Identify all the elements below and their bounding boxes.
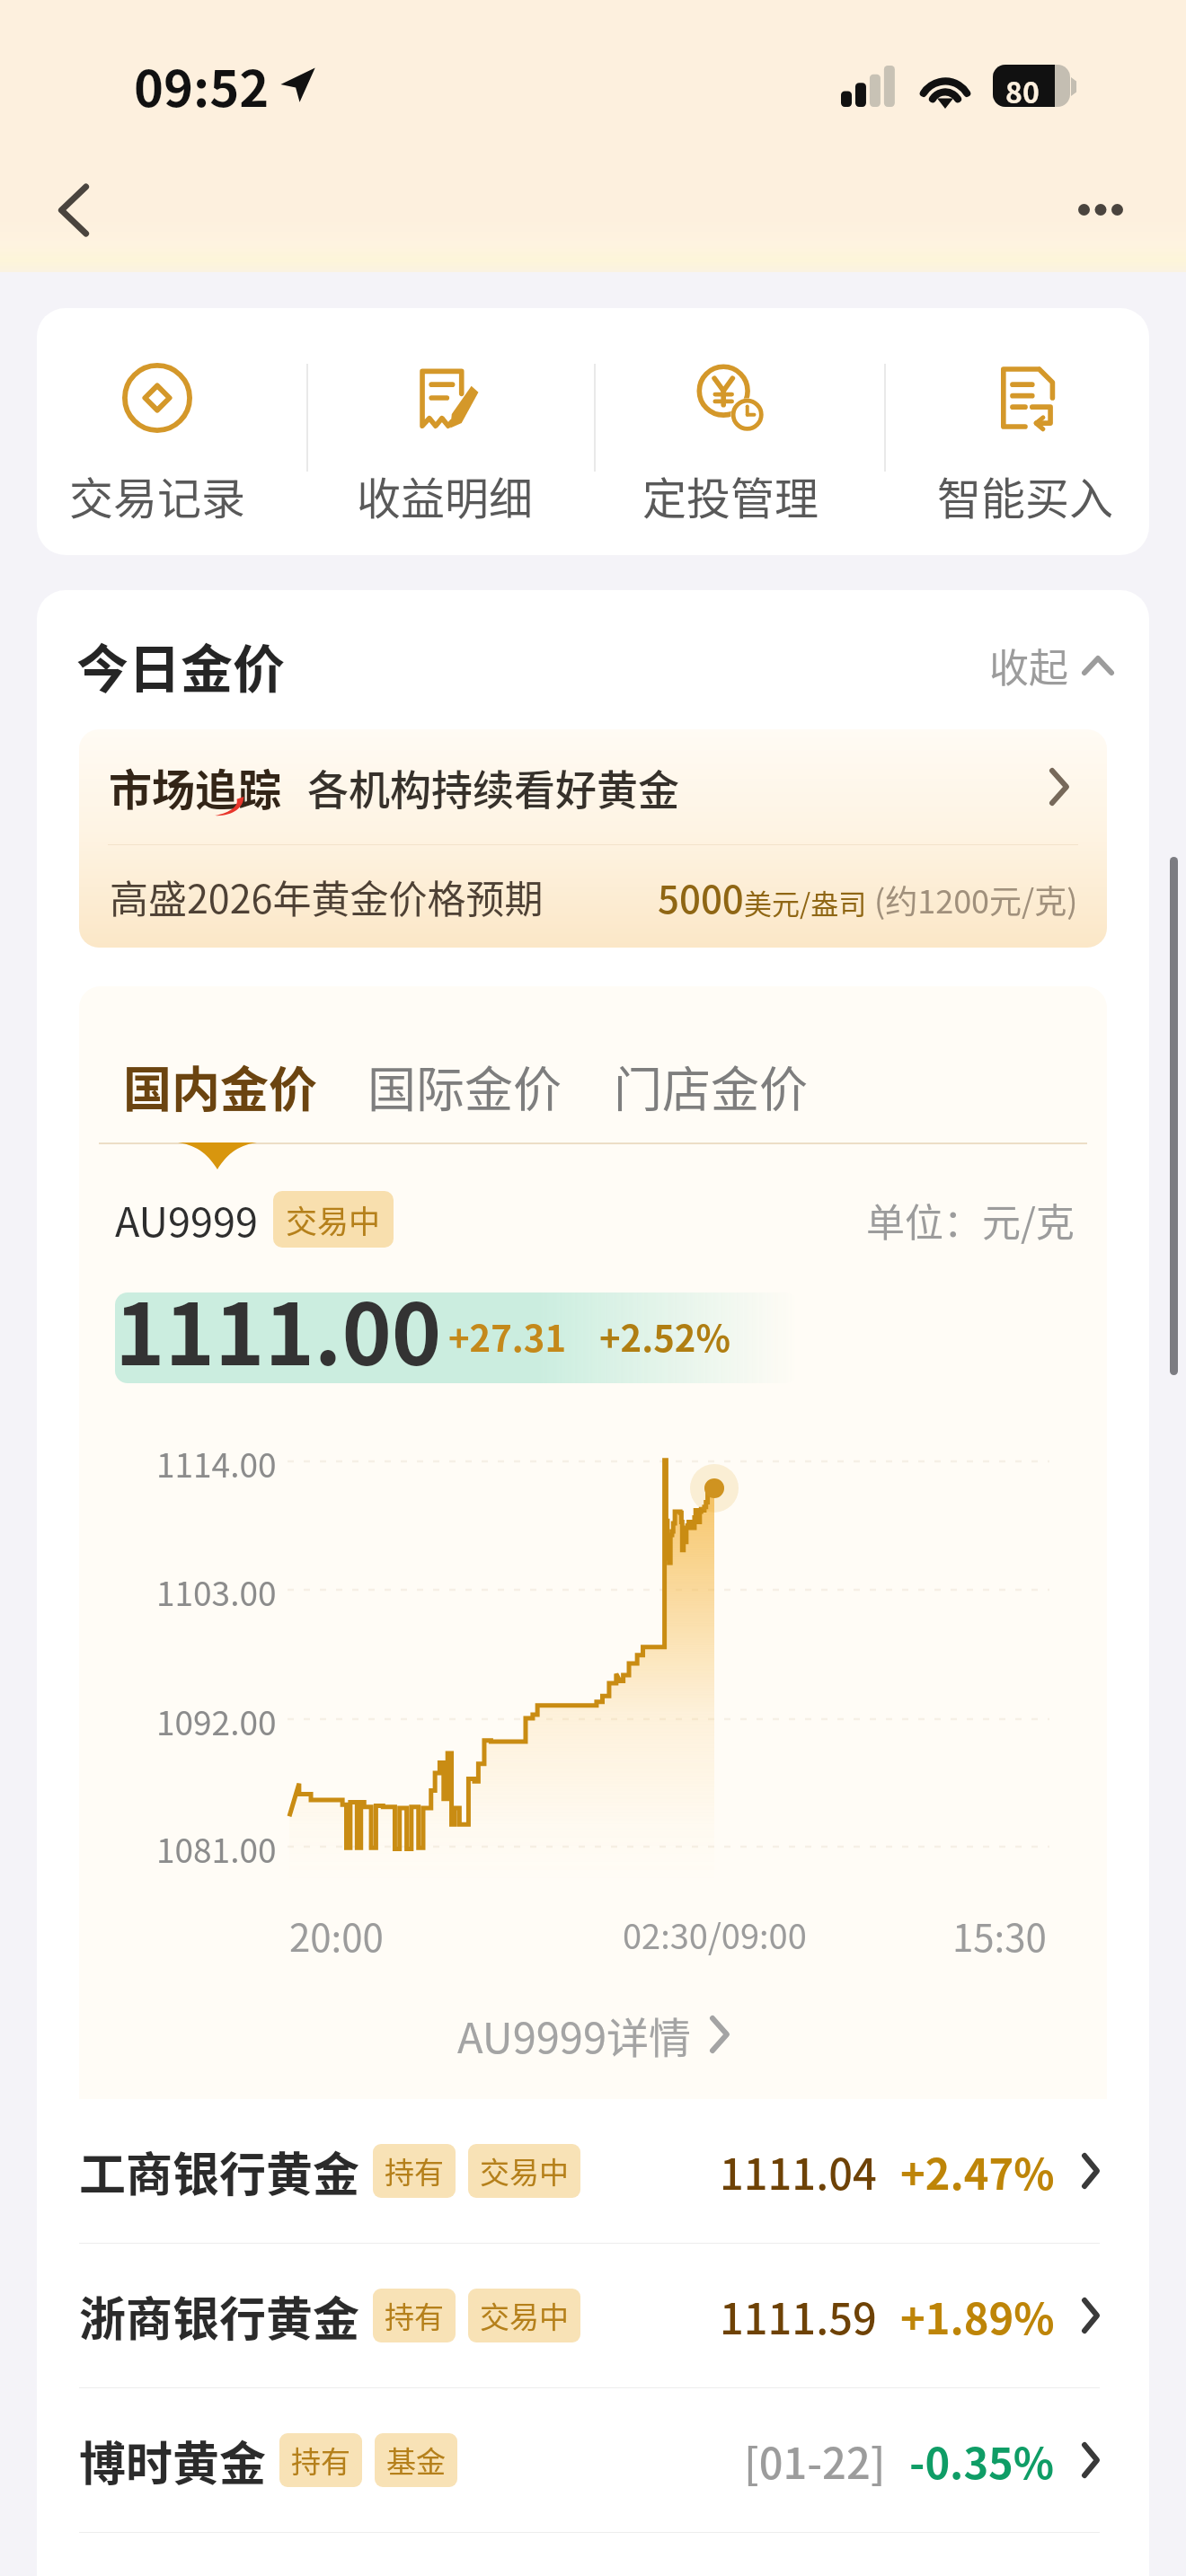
staticText: 基金: [386, 2439, 446, 2482]
button[interactable]: AU9999详情: [79, 1998, 1107, 2070]
button[interactable]: 智能买入: [890, 308, 1149, 555]
staticText: 1103.00: [156, 1567, 277, 1616]
staticText: 各机构持续看好黄金: [307, 757, 679, 817]
button[interactable]: 工商银行黄金: [79, 2099, 1100, 2243]
staticText: 1111.59: [720, 2285, 877, 2346]
staticText: +1.89%: [900, 2285, 1055, 2346]
button[interactable]: More options: [1056, 164, 1146, 254]
staticText: 定投管理: [642, 463, 819, 527]
staticText: 1092.00: [156, 1697, 277, 1745]
button[interactable]: 收起: [989, 626, 1113, 705]
button[interactable]: 博时黄金: [79, 2388, 1100, 2532]
staticText: 高盛2026年黄金价格预期: [110, 869, 544, 924]
staticText: 交易记录: [69, 463, 246, 527]
staticText: +27.31: [448, 1310, 566, 1363]
staticText: 1081.00: [156, 1824, 277, 1873]
staticText: 80: [1005, 70, 1040, 111]
staticText: 收起: [989, 637, 1068, 694]
staticText: AU9999详情: [457, 2004, 692, 2065]
staticText: AU9999: [115, 1190, 258, 1248]
staticText: 收益明细: [357, 463, 534, 527]
button[interactable]: 国际金价: [367, 1051, 562, 1121]
staticText: 智能买入: [937, 463, 1114, 527]
staticText: 交易中: [286, 1196, 381, 1242]
staticText: 交易中: [480, 2149, 569, 2192]
staticText: -0.35%: [909, 2430, 1055, 2491]
staticText: 持有: [385, 2149, 444, 2192]
button[interactable]: 浙商银行黄金: [79, 2244, 1100, 2387]
staticText: [01-22]: [744, 2430, 886, 2491]
staticText: +2.52%: [599, 1310, 730, 1363]
button[interactable]: 定投管理: [596, 308, 865, 555]
staticText: 1111.00: [115, 1267, 442, 1375]
staticText: +2.47%: [900, 2140, 1055, 2201]
staticText: (约1200元/克): [874, 876, 1078, 922]
button[interactable]: Back: [29, 165, 119, 255]
staticText: 09:52: [134, 49, 270, 121]
staticText: 工商银行黄金: [79, 2138, 360, 2205]
button[interactable]: 收益明细: [310, 308, 580, 555]
staticText: 持有: [385, 2294, 444, 2337]
staticText: 1114.00: [156, 1439, 277, 1487]
staticText: 5000: [658, 869, 744, 924]
staticText: 博时黄金: [79, 2427, 267, 2494]
staticText: 单位：: [866, 1192, 982, 1248]
staticText: 20:00: [289, 1908, 384, 1963]
button[interactable]: 国内金价: [123, 1051, 317, 1121]
staticText: 1111.04: [720, 2140, 877, 2201]
staticText: 门店金价: [614, 1051, 808, 1121]
staticText: 今日金价: [76, 628, 286, 703]
staticText: 元/克: [982, 1192, 1075, 1248]
staticText: 国际金价: [367, 1051, 562, 1121]
staticText: 市场追踪: [109, 755, 282, 818]
button[interactable]: 交易记录: [37, 308, 292, 555]
staticText: 02:30/09:00: [623, 1910, 807, 1959]
staticText: 国内金价: [123, 1051, 317, 1121]
staticText: 持有: [291, 2439, 350, 2482]
staticText: 15:30: [952, 1908, 1047, 1963]
staticText: 交易中: [480, 2294, 569, 2337]
staticText: 浙商银行黄金: [79, 2282, 360, 2350]
button[interactable]: 门店金价: [614, 1051, 808, 1121]
staticText: 美元/盎司: [744, 882, 867, 922]
button[interactable]: 市场追踪: [79, 729, 1107, 844]
